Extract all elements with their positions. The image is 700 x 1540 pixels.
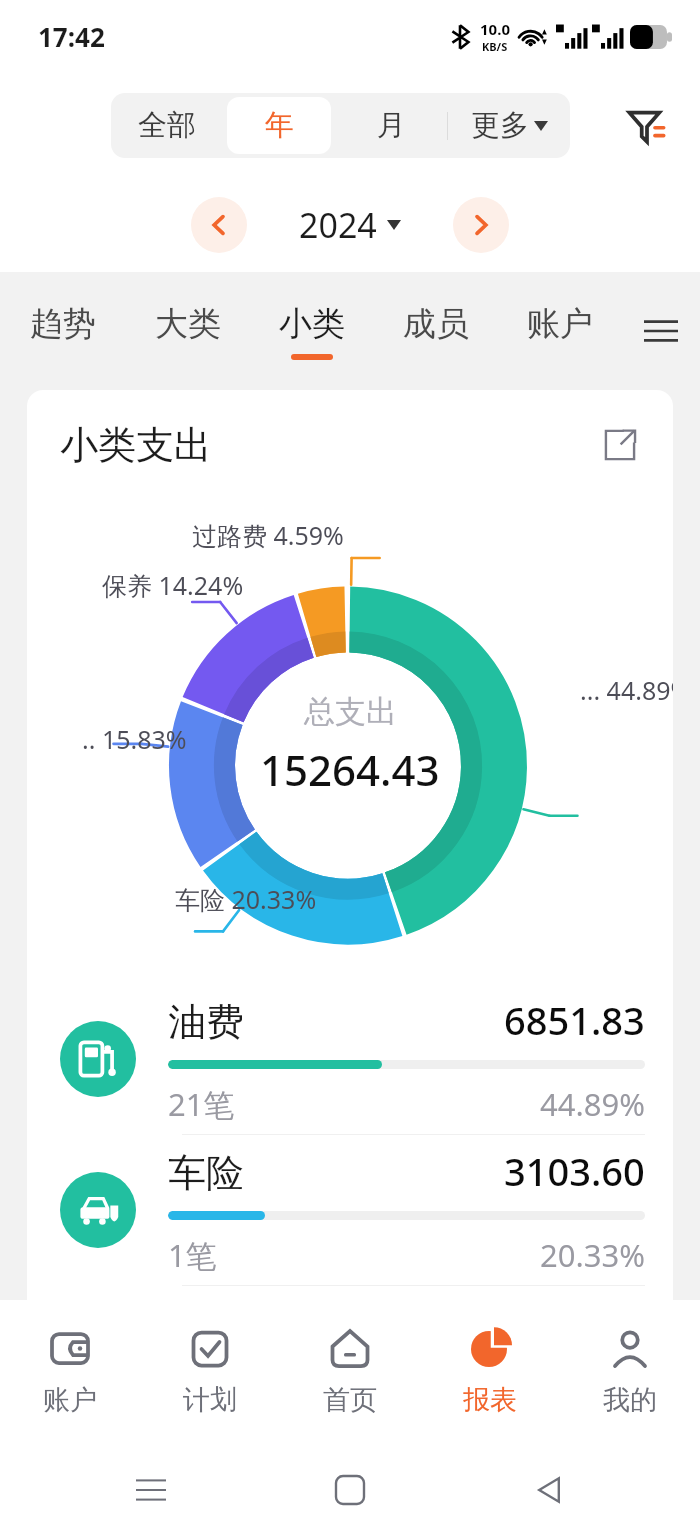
button[interactable]: 油费 <box>27 984 673 1134</box>
button[interactable]: 更多 <box>448 93 570 158</box>
button[interactable]: 成员 <box>374 272 498 390</box>
staticText: 21笔 <box>168 1083 235 1125</box>
staticText: 20.33% <box>540 1234 645 1276</box>
staticText: 小类 <box>279 303 345 345</box>
staticText: 年 <box>265 107 294 144</box>
button[interactable]: 全部 <box>115 97 219 154</box>
staticText: 过路费 4.59% <box>192 518 344 552</box>
button[interactable]: Previous year <box>191 197 247 253</box>
button[interactable]: 账户 <box>498 272 622 390</box>
staticText: .. 15.83% <box>82 722 187 756</box>
button[interactable]: More tabs <box>622 272 700 390</box>
staticText: 全部 <box>138 107 196 144</box>
button[interactable]: 年 <box>227 97 331 154</box>
staticText: 15264.43 <box>260 741 440 798</box>
button[interactable]: 月 <box>339 97 443 154</box>
button[interactable]: 计划 <box>140 1300 280 1440</box>
staticText: 账户 <box>43 1383 97 1417</box>
button[interactable]: 首页 <box>280 1300 420 1440</box>
staticText: 月 <box>377 107 406 144</box>
staticText: 成员 <box>403 303 469 345</box>
button[interactable]: 账户 <box>0 1300 140 1440</box>
staticText: 计划 <box>183 1383 237 1417</box>
staticText: 账户 <box>527 303 593 345</box>
staticText: 车险 <box>168 1149 244 1197</box>
button[interactable]: Back <box>513 1454 585 1526</box>
button[interactable]: 趋势 <box>0 272 125 390</box>
staticText: 小类支出 <box>60 421 212 469</box>
staticText: 2024 <box>299 202 377 248</box>
button[interactable]: 车险 <box>27 1135 673 1285</box>
staticText: ... 44.89% <box>580 673 673 707</box>
button[interactable]: 2024 <box>299 202 401 248</box>
staticText: 我的 <box>603 1383 657 1417</box>
staticText: 大类 <box>155 303 221 345</box>
staticText: 44.89% <box>540 1083 645 1125</box>
button[interactable]: Open full report <box>595 420 645 470</box>
staticText: 6851.83 <box>504 994 645 1046</box>
staticText: 报表 <box>463 1383 517 1417</box>
button[interactable]: 我的 <box>560 1300 700 1440</box>
staticText: 总支出 <box>304 692 397 731</box>
button[interactable]: Home <box>314 1454 386 1526</box>
staticText: KB/S <box>482 39 508 54</box>
button[interactable]: 大类 <box>125 272 250 390</box>
staticText: 趋势 <box>30 303 96 345</box>
staticText: 油费 <box>168 998 244 1046</box>
staticText: 首页 <box>323 1383 377 1417</box>
button[interactable]: Next year <box>453 197 509 253</box>
staticText: 更多 <box>471 107 529 144</box>
staticText: 3103.60 <box>504 1145 645 1197</box>
button[interactable]: Recent apps <box>115 1454 187 1526</box>
staticText: 10.0 <box>480 19 510 39</box>
button[interactable]: Filter <box>612 90 682 160</box>
staticText: 1笔 <box>168 1234 217 1276</box>
button[interactable]: 报表 <box>420 1300 560 1440</box>
staticText: 17:42 <box>38 19 105 54</box>
staticText: 保养 14.24% <box>102 568 244 602</box>
button[interactable]: 小类 <box>250 272 374 390</box>
staticText: 车险 20.33% <box>175 882 317 916</box>
